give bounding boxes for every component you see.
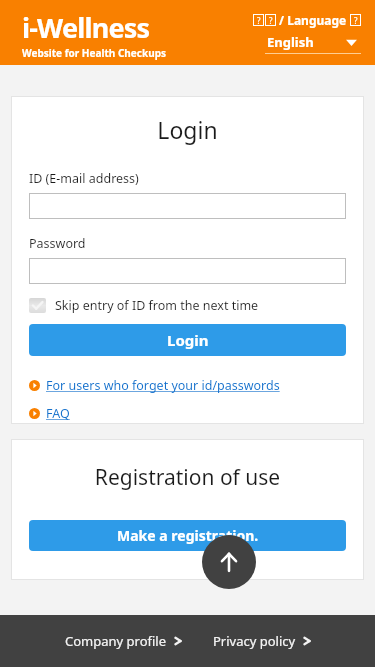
staticText: / Language — [276, 12, 350, 28]
staticText: FAQ — [46, 405, 70, 422]
button[interactable]: For users who forget your id/passwords — [29, 377, 280, 394]
button[interactable]: Skip entry of ID from the next time — [29, 297, 259, 314]
staticText: For users who forget your id/passwords — [46, 377, 280, 394]
button[interactable]: FAQ — [29, 405, 70, 422]
staticText: ? — [269, 15, 273, 26]
staticText: Skip entry of ID from the next time — [55, 297, 259, 314]
staticText: ? — [257, 15, 261, 26]
button[interactable]: Company profile — [65, 632, 182, 650]
button[interactable] — [29, 193, 346, 219]
button[interactable] — [29, 258, 346, 284]
button[interactable]: Login — [29, 324, 346, 356]
staticText: ID (E-mail address) — [29, 170, 139, 187]
staticText: Login — [167, 330, 209, 350]
staticText: i-Wellness — [22, 9, 150, 46]
staticText: Make a registration. — [117, 526, 259, 545]
staticText: Password — [29, 235, 86, 252]
staticText: Privacy policy — [213, 632, 296, 650]
button[interactable]: English — [265, 33, 361, 54]
staticText: Registration of use — [11, 463, 364, 492]
staticText: Login — [11, 114, 364, 145]
button[interactable]: Privacy policy — [213, 632, 311, 650]
staticText: Website for Health Checkups — [22, 46, 166, 60]
staticText: Company profile — [65, 632, 167, 650]
staticText: English — [267, 33, 314, 51]
button[interactable]: Make a registration. — [29, 520, 346, 551]
button[interactable]: Scroll to top — [202, 535, 256, 589]
staticText: ? — [354, 15, 358, 26]
